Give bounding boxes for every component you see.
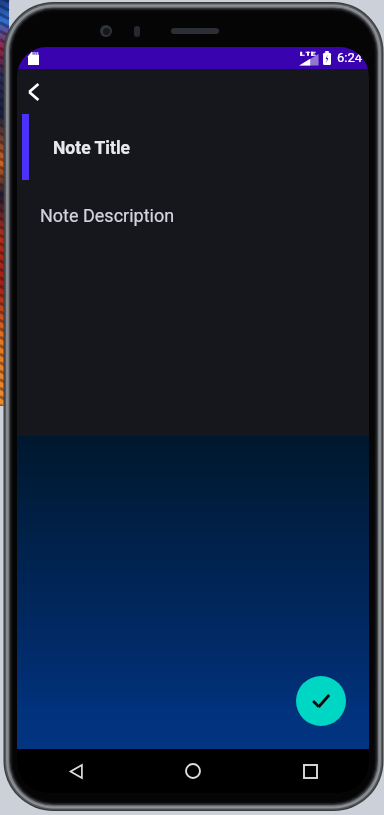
button[interactable]: Back [56,751,96,791]
button[interactable]: Back [18,76,49,107]
staticText: Note Description [40,205,175,226]
staticText: Note Title [53,138,130,159]
staticText: 6:24 [337,50,363,65]
button[interactable]: Save note [296,676,346,726]
button[interactable]: Home [173,751,213,791]
button[interactable]: Recent apps [290,751,330,791]
